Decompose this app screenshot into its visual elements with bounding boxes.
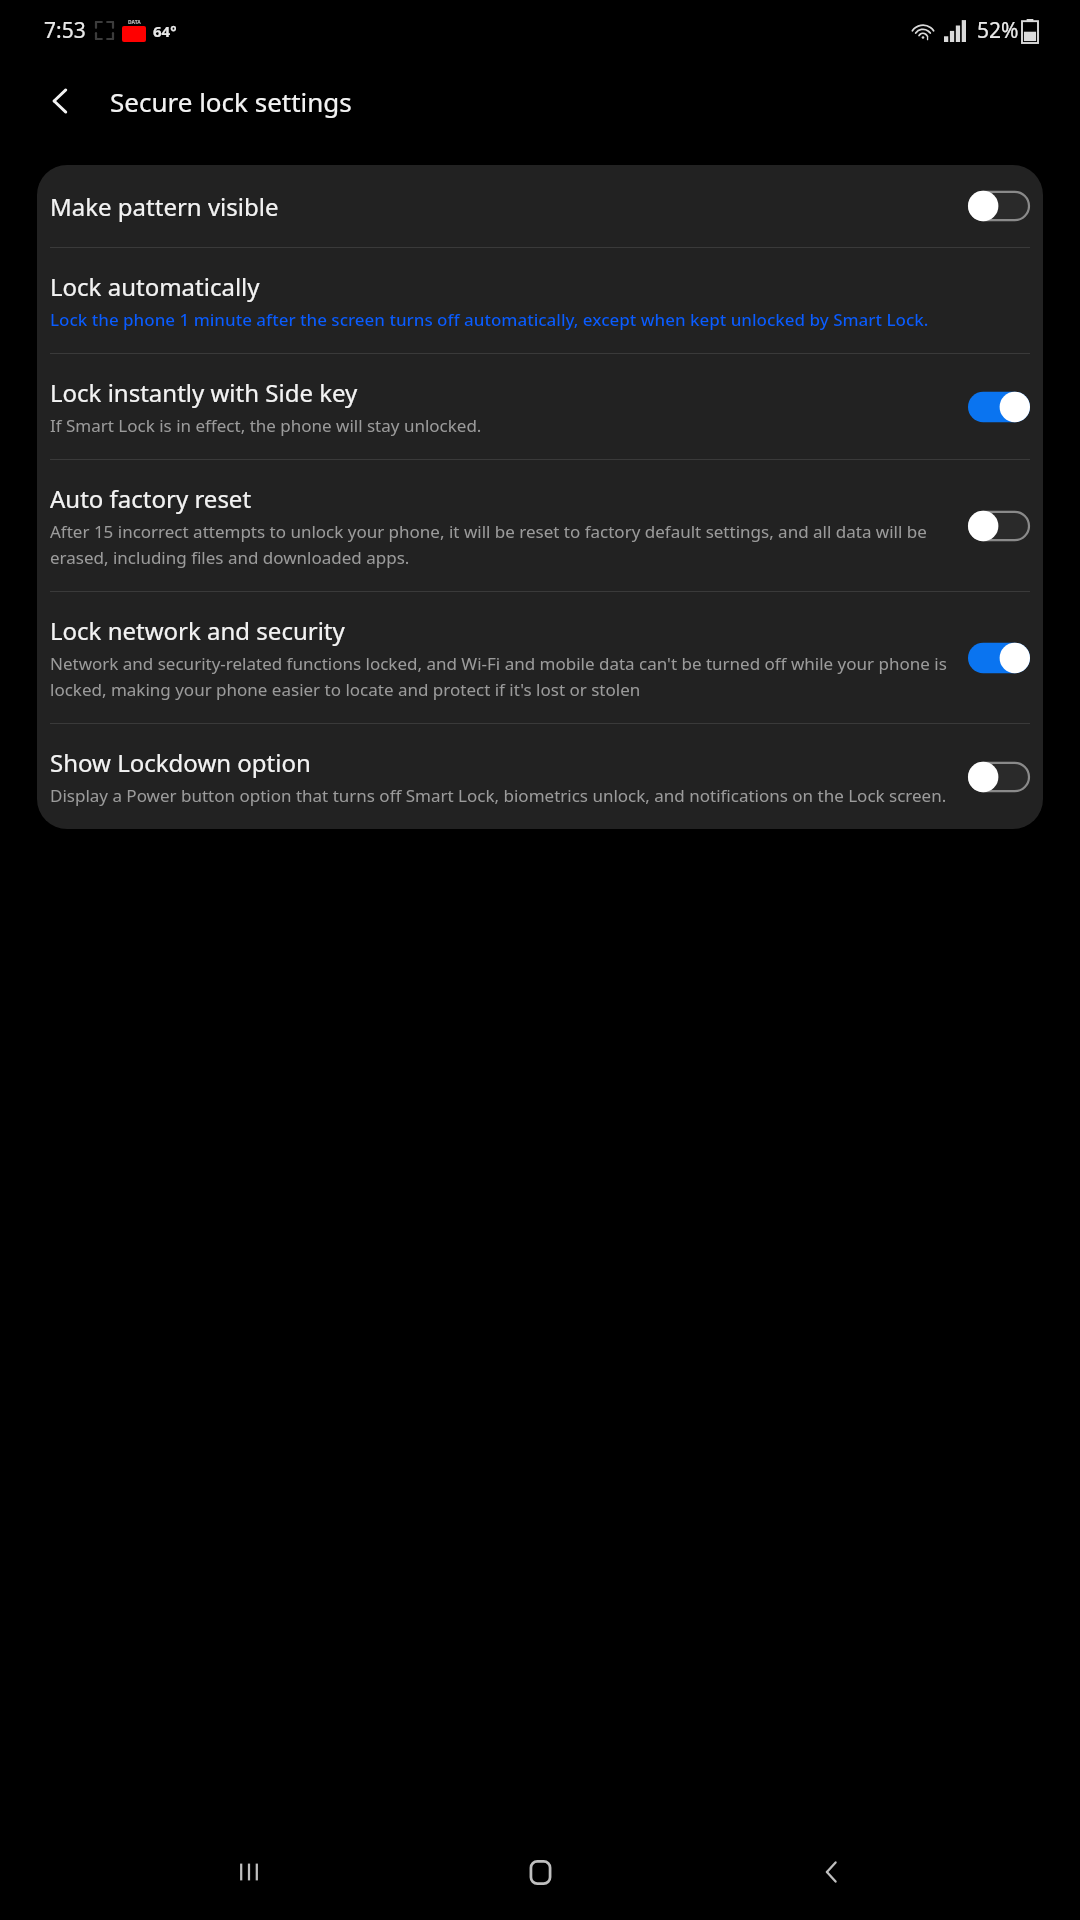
staticText: 64°	[153, 21, 177, 41]
button[interactable]: Show Lockdown option	[37, 724, 1043, 829]
staticText: Lock automatically	[50, 270, 260, 303]
staticText: 7:53	[44, 16, 86, 45]
button[interactable]: Lock automatically	[37, 248, 1043, 353]
button[interactable]: Toggle on	[968, 388, 1030, 426]
staticText: Show Lockdown option	[50, 746, 311, 779]
button[interactable]: Auto factory reset	[37, 460, 1043, 591]
staticText: Lock network and security	[50, 614, 345, 647]
button[interactable]: Lock network and security	[37, 592, 1043, 723]
staticText: Secure lock settings	[110, 84, 352, 119]
button[interactable]: Back	[789, 1829, 875, 1915]
button[interactable]: Lock instantly with Side key	[37, 354, 1043, 459]
staticText: Make pattern visible	[50, 190, 279, 223]
staticText: 52%	[977, 16, 1019, 45]
staticText: Auto factory reset	[50, 482, 252, 515]
staticText: Display a Power button option that turns…	[50, 784, 947, 807]
button[interactable]: Make pattern visible	[37, 165, 1043, 247]
staticText: After 15 incorrect attempts to unlock yo…	[50, 520, 952, 569]
button[interactable]: Home	[497, 1829, 583, 1915]
button[interactable]: Recent apps	[206, 1829, 292, 1915]
staticText: Lock instantly with Side key	[50, 376, 358, 409]
button[interactable]: Toggle on	[968, 639, 1030, 677]
staticText: DATA	[128, 19, 141, 26]
button[interactable]: Toggle off	[968, 758, 1030, 796]
staticText: Lock the phone 1 minute after the screen…	[50, 308, 929, 331]
staticText: Network and security-related functions l…	[50, 652, 952, 701]
button[interactable]: Back	[26, 66, 96, 136]
button[interactable]: Toggle off	[968, 507, 1030, 545]
button[interactable]: Toggle off	[968, 187, 1030, 225]
staticText: If Smart Lock is in effect, the phone wi…	[50, 414, 482, 437]
